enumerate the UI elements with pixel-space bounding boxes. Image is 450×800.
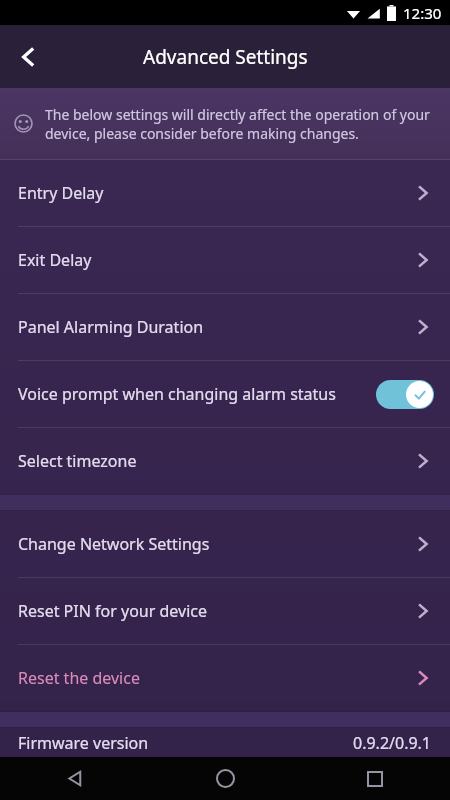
button[interactable]: Back xyxy=(0,757,150,800)
staticText: Reset PIN for your device xyxy=(18,600,414,622)
button[interactable]: Reset PIN for your device xyxy=(0,578,450,644)
button[interactable]: Recent apps xyxy=(300,757,450,800)
staticText: Firmware version xyxy=(18,732,353,754)
staticText: Entry Delay xyxy=(18,182,414,204)
button[interactable]: Panel Alarming Duration xyxy=(0,294,450,360)
button[interactable]: Home xyxy=(150,757,300,800)
button[interactable]: Reset the device xyxy=(0,645,450,711)
button[interactable]: Change Network Settings xyxy=(0,511,450,577)
staticText: 0.9.2/0.9.1 xyxy=(353,732,432,754)
staticText: Select timezone xyxy=(18,450,414,472)
button[interactable]: Exit Delay xyxy=(0,227,450,293)
button[interactable]: Firmware version xyxy=(0,728,450,757)
staticText: Panel Alarming Duration xyxy=(18,316,414,338)
button[interactable]: Entry Delay xyxy=(0,160,450,226)
staticText: Advanced Settings xyxy=(143,44,308,70)
staticText: 12:30 xyxy=(403,3,442,23)
staticText: Change Network Settings xyxy=(18,533,414,555)
staticText: Exit Delay xyxy=(18,249,414,271)
button[interactable]: Voice prompt when changing alarm status xyxy=(0,361,450,427)
staticText: The below settings will directly affect … xyxy=(45,105,430,143)
button[interactable]: Back xyxy=(0,29,56,85)
staticText: Voice prompt when changing alarm status xyxy=(18,383,370,405)
button[interactable]: Select timezone xyxy=(0,428,450,494)
staticText: Reset the device xyxy=(18,667,414,689)
